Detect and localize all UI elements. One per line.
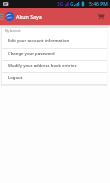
staticText: G (70, 1, 74, 8)
staticText: 5:46 PM (89, 1, 108, 8)
button[interactable]: Edit your account information (2, 35, 107, 47)
button[interactable]: Logout (2, 72, 107, 84)
staticText: My Account (5, 29, 21, 33)
staticText: Logout (8, 75, 23, 81)
staticText: 3G (57, 1, 64, 8)
button[interactable]: Shopping cart (97, 12, 106, 21)
staticText: Akun Saya (16, 13, 42, 20)
staticText: Edit your account information (8, 38, 70, 44)
button[interactable]: Menu (0, 9, 5, 25)
button[interactable]: Change your password (2, 48, 107, 60)
staticText: Modify your address book entries (8, 63, 77, 69)
staticText: Change your password (8, 51, 55, 57)
button[interactable]: Modify your address book entries (2, 60, 107, 72)
